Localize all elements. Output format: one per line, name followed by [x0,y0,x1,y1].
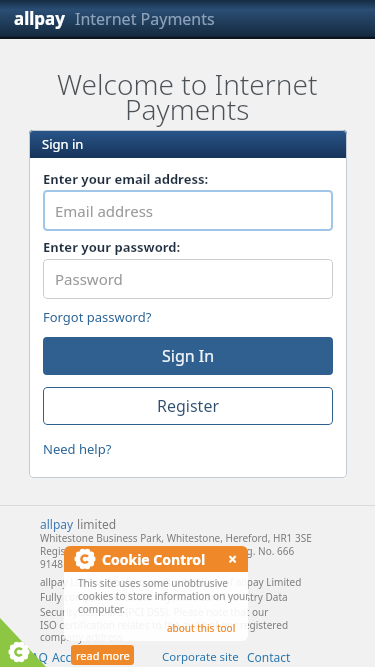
staticText: Security Standard (PCI DSS). Please note… [40,605,269,619]
staticText: Register [157,395,220,417]
button[interactable]: Password [43,259,333,299]
staticText: Fully compliant with the Payment Card In… [40,590,288,604]
staticText: computer. [78,602,125,616]
button[interactable] [0,628,39,667]
button[interactable]: about this tool [167,621,236,635]
staticText: Password [55,269,123,289]
staticText: Email address [55,201,154,221]
staticText: read more [76,648,130,663]
staticText: Internet Payments [75,8,215,30]
staticText: ISO certification relates to the audit o… [40,618,289,632]
staticText: allpay Ltd is a wholly owned subsidiary … [40,575,302,589]
button[interactable]: Need help? [43,440,112,458]
button[interactable]: FAQ [25,649,48,665]
staticText: allpay [14,7,65,30]
staticText: Welcome to Internet [57,65,318,103]
button[interactable]: Email address [43,190,333,231]
staticText: cookies to store information on your [78,589,248,603]
staticText: 9148 48 [40,557,77,571]
staticText: Whitestone Business Park, Whitestone, He… [40,531,312,545]
button[interactable]: Accreditations [52,649,133,665]
button[interactable]: Forgot password? [43,308,152,326]
staticText: Sign In [162,345,215,367]
button[interactable]: read more [71,645,134,665]
staticText: This site uses some unobtrusive [78,576,228,590]
staticText: limited [74,516,117,532]
staticText: Registered in England No. 02933565. VAT … [40,544,295,558]
button[interactable]: × [228,548,238,570]
staticText: Cookie Control [102,550,206,569]
staticText: Enter your password: [43,238,181,256]
button[interactable]: Contact [247,649,291,665]
staticText: Enter your email address: [43,170,209,188]
button[interactable]: Corporate site [162,649,239,665]
button[interactable]: Register [43,387,333,425]
staticText: company address [40,630,123,644]
button[interactable]: Sign In [43,337,333,375]
staticText: Sign in [42,135,84,153]
button[interactable]: allpay [40,516,74,532]
staticText: Payments [125,90,250,128]
